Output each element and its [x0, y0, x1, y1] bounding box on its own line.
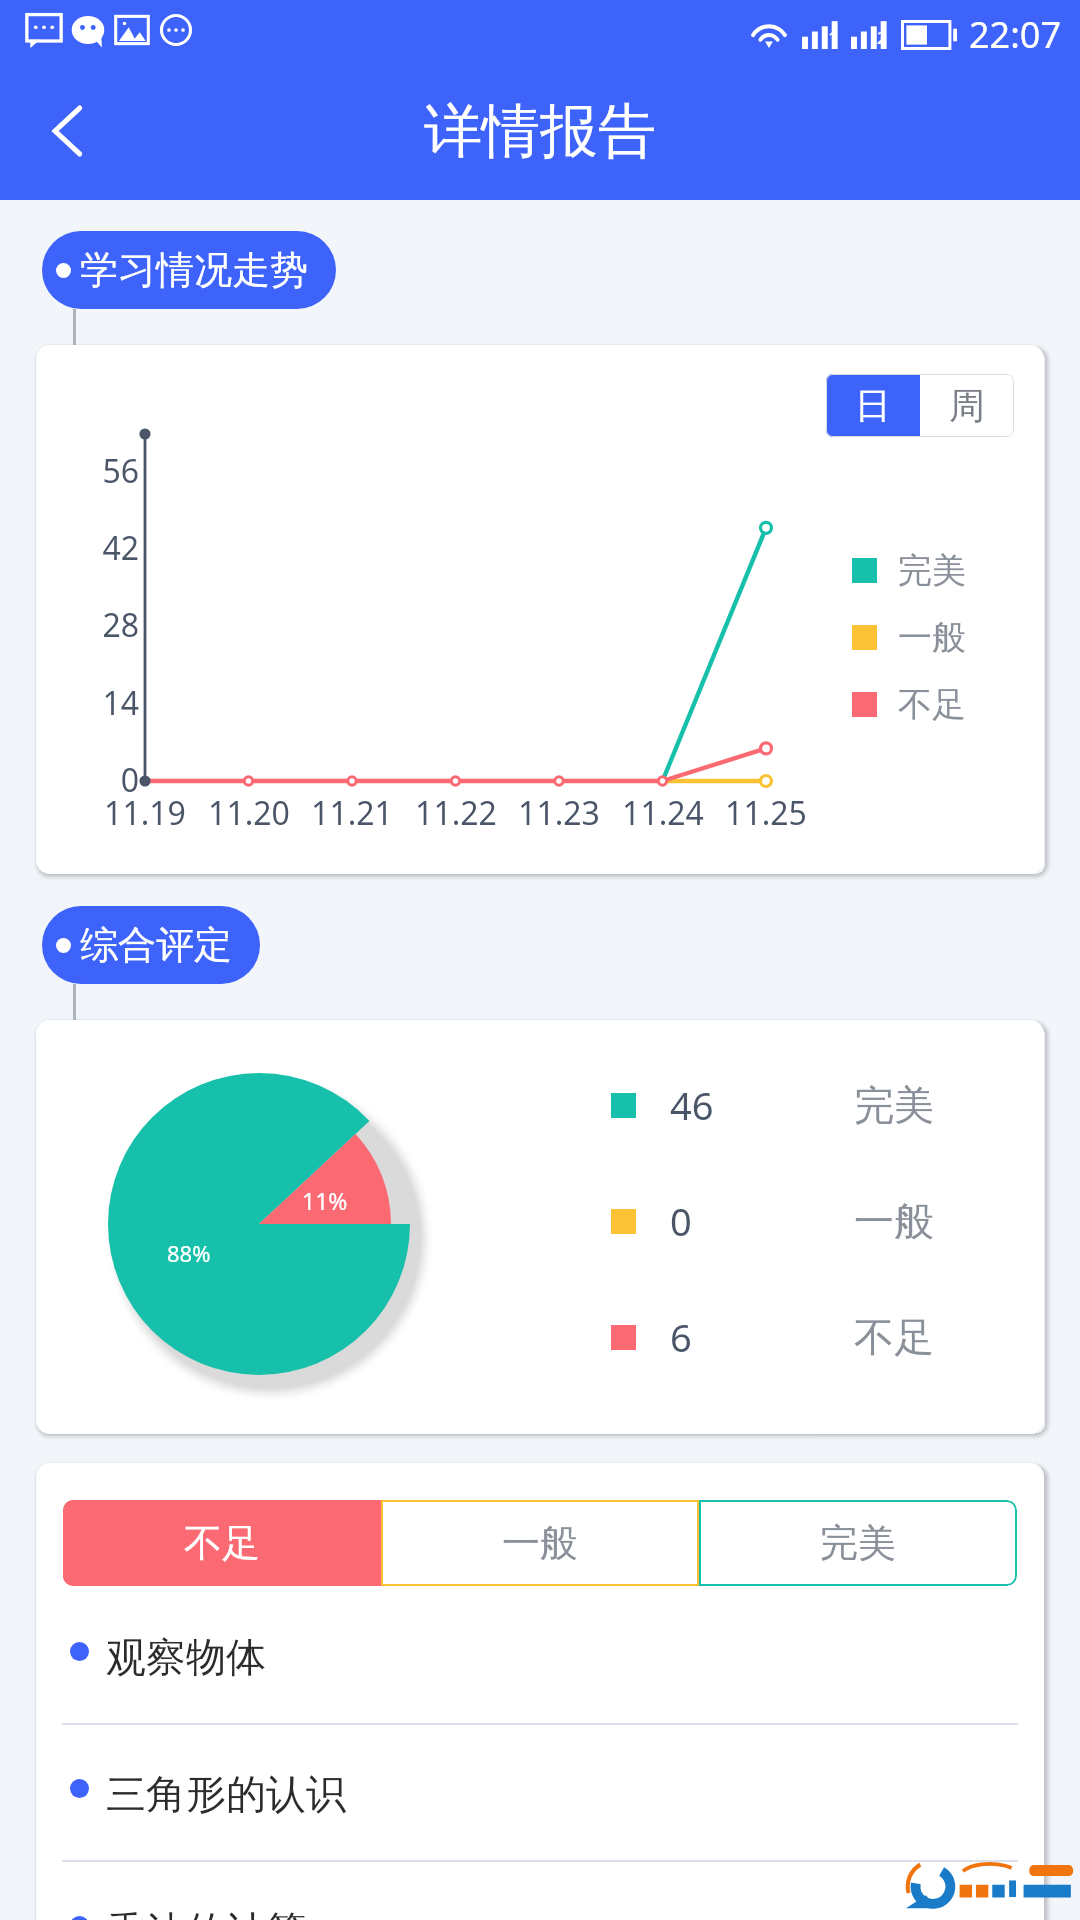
staticText: 46 [670, 1079, 714, 1131]
button[interactable]: 日 [826, 374, 920, 437]
staticText: 三角形的认识 [106, 1769, 346, 1819]
staticText: 88% [167, 1238, 211, 1268]
button[interactable]: 综合评定 [42, 906, 260, 984]
staticText: 一般 [502, 1519, 578, 1567]
staticText: 不足 [184, 1519, 260, 1567]
button[interactable]: 0 [611, 1195, 934, 1247]
staticText: 11.19 [80, 791, 210, 835]
button[interactable]: 一般 [852, 616, 966, 659]
staticText: 11.24 [598, 791, 728, 835]
button[interactable]: 一般 [381, 1500, 699, 1586]
staticText: 14 [64, 681, 139, 725]
staticText: 56 [64, 449, 139, 493]
button[interactable]: 周 [920, 374, 1014, 437]
staticText: 1 [828, 26, 838, 49]
staticText: 一般 [898, 616, 966, 659]
button[interactable]: 观察物体 [36, 1586, 1044, 1723]
staticText: 一般 [854, 1196, 934, 1246]
staticText: 完美 [898, 549, 966, 592]
button[interactable]: 乘法的计算 [36, 1860, 1044, 1920]
staticText: 11.25 [701, 791, 831, 835]
staticText: 11.20 [184, 791, 314, 835]
staticText: 2 [877, 26, 887, 49]
button[interactable]: 不足 [852, 683, 966, 726]
staticText: 11.22 [391, 791, 521, 835]
staticText: 11.21 [287, 791, 417, 835]
button[interactable]: 6 [611, 1311, 934, 1363]
staticText: 22:07 [969, 10, 1062, 59]
button[interactable]: 46 [611, 1079, 934, 1131]
staticText: 乘法的计算 [106, 1906, 306, 1920]
staticText: 6 [670, 1311, 692, 1363]
staticText: 周 [949, 383, 985, 428]
staticText: 不足 [898, 683, 966, 726]
staticText: 详情报告 [424, 95, 656, 168]
button[interactable]: 学习情况走势 [42, 231, 336, 309]
staticText: 11.23 [494, 791, 624, 835]
button[interactable]: 完美 [852, 549, 966, 592]
button[interactable]: 三角形的认识 [36, 1723, 1044, 1860]
staticText: 完美 [854, 1080, 934, 1130]
staticText: 42 [64, 526, 139, 570]
staticText: 0 [64, 758, 139, 802]
staticText: 完美 [820, 1519, 896, 1567]
staticText: 学习情况走势 [80, 246, 308, 294]
button[interactable]: 完美 [699, 1500, 1017, 1586]
staticText: 综合评定 [80, 921, 232, 969]
staticText: 日 [855, 383, 891, 428]
button[interactable]: Back [28, 90, 110, 172]
staticText: 11% [302, 1185, 348, 1216]
staticText: 0 [670, 1195, 692, 1247]
staticText: 不足 [854, 1312, 934, 1362]
staticText: 观察物体 [106, 1632, 266, 1682]
button[interactable]: 不足 [63, 1500, 381, 1586]
staticText: 28 [64, 603, 139, 647]
